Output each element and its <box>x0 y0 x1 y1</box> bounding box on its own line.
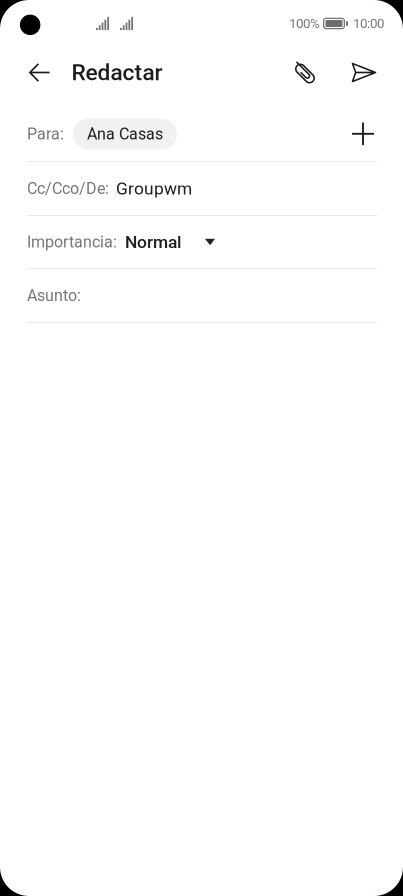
staticText: Groupwm <box>116 178 192 199</box>
button[interactable]: Ana Casas <box>73 118 177 149</box>
staticText: Ana Casas <box>87 125 163 143</box>
button[interactable]: Attach file <box>277 47 336 98</box>
staticText: Redactar <box>71 59 162 86</box>
staticText: Asunto: <box>27 286 81 305</box>
staticText: Importancia: <box>27 233 117 251</box>
button[interactable]: Add recipient <box>346 117 380 151</box>
staticText: 100% <box>289 16 320 31</box>
button[interactable]: Asunto: <box>0 269 403 322</box>
staticText: Cc/Cco/De: <box>27 179 109 198</box>
button[interactable]: Send <box>336 47 392 98</box>
button[interactable]: Normal <box>125 232 215 252</box>
staticText: Normal <box>125 232 181 252</box>
button[interactable]: Back <box>0 47 57 98</box>
staticText: 10:00 <box>353 16 384 31</box>
button[interactable]: Cc/Cco/De: <box>0 162 403 215</box>
staticText: Para: <box>27 125 64 143</box>
